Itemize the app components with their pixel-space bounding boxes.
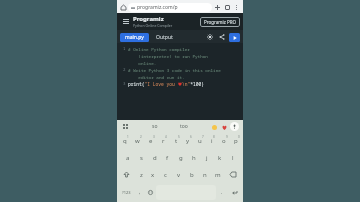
staticText: 3 [153,135,155,139]
button[interactable]: b [185,166,198,183]
staticText: e [149,137,153,145]
staticText: p [234,137,238,145]
button[interactable]: Stickers [220,123,228,131]
button[interactable]: l [226,149,239,166]
staticText: m [215,171,221,179]
staticText: 8 [213,135,215,139]
button[interactable]: New tab [212,2,222,12]
button[interactable]: h [187,149,200,166]
staticText: . [221,189,223,196]
staticText: s [140,154,143,162]
staticText: 5 [178,135,180,139]
staticText: 7 [202,135,204,139]
button[interactable]: n [198,166,211,183]
staticText: # Write Python 3 code in this online [128,67,221,73]
button[interactable]: Emoji [210,123,218,131]
staticText: o [222,137,226,145]
staticText: f [166,154,169,162]
button[interactable]: Run [229,33,240,42]
button[interactable]: j [200,149,213,166]
button[interactable]: Voice input [230,122,239,131]
staticText: 1 [123,46,126,52]
button[interactable]: m [211,166,224,183]
staticText: too [180,123,188,130]
button[interactable]: Tabs [222,2,232,12]
staticText: 6 [190,135,192,139]
button[interactable]: main.py [120,33,149,42]
button[interactable]: Enter [227,184,241,201]
staticText: a [126,154,130,162]
staticText: Python Online Compiler [133,23,173,28]
staticText: z [140,171,143,179]
staticText: so [152,123,158,130]
staticText: g [179,154,183,162]
staticText: y [186,137,190,145]
staticText: 2 [123,67,126,73]
button[interactable]: , [134,184,145,201]
button[interactable]: Home [119,3,128,12]
staticText: editor and run it. [128,74,185,80]
button[interactable]: Toolbar [121,122,130,131]
button[interactable]: a [121,149,135,166]
button[interactable]: k [213,149,226,166]
staticText: 1 [127,135,129,139]
staticText: d [153,154,157,162]
staticText: t [175,137,178,145]
button[interactable]: i [206,133,218,149]
staticText: Output [156,34,173,41]
staticText: main.py [125,34,144,41]
staticText: n [203,171,207,179]
staticText: h [192,154,196,162]
staticText: \n"*100) [182,81,205,87]
button[interactable]: f [161,149,174,166]
button[interactable]: z [135,166,147,183]
button[interactable]: Backspace [224,166,242,183]
staticText: b [190,171,194,179]
button[interactable]: Theme [205,32,215,42]
staticText: print("I Love you [128,81,178,87]
staticText: 2 [140,135,142,139]
staticText: c [164,171,167,179]
staticText: , [139,189,141,196]
button[interactable]: Shift [118,166,135,183]
button[interactable]: d [148,149,161,166]
button[interactable]: More options [232,3,241,12]
button[interactable]: Output [152,33,177,42]
button[interactable]: programiz.com/p [128,3,212,12]
button[interactable]: c [159,166,172,183]
button[interactable]: u [194,133,206,149]
button[interactable]: q [118,133,131,149]
button[interactable]: v [172,166,185,183]
button[interactable]: e [144,133,157,149]
button[interactable]: . [216,184,227,201]
button[interactable]: w [131,133,144,149]
button[interactable]: Programiz PRO [200,17,240,27]
staticText: u [198,137,202,145]
button[interactable]: r [157,133,170,149]
staticText: online. [128,60,157,66]
button[interactable]: t [170,133,182,149]
staticText: l [232,154,234,162]
staticText: r [162,137,165,145]
staticText: j [206,154,208,162]
staticText: # Online Python compiler [128,46,190,52]
staticText: w [135,137,140,145]
staticText: q [123,137,127,145]
button[interactable]: Menu [120,16,131,27]
button[interactable]: ?123 [119,184,134,201]
button[interactable]: o [218,133,230,149]
staticText: (interpreter) to run Python [128,53,208,59]
staticText: programiz.com/p [137,4,178,11]
button[interactable]: Share [217,32,227,42]
staticText: i [211,137,213,145]
button[interactable]: Emoji [145,184,156,201]
staticText: 3 [123,81,126,87]
staticText: 4 [165,135,167,139]
button[interactable]: y [182,133,194,149]
staticText: Programiz PRO [204,19,236,25]
button[interactable]: s [135,149,148,166]
button[interactable]: g [174,149,187,166]
button[interactable]: p [230,133,242,149]
button[interactable]: x [147,166,159,183]
